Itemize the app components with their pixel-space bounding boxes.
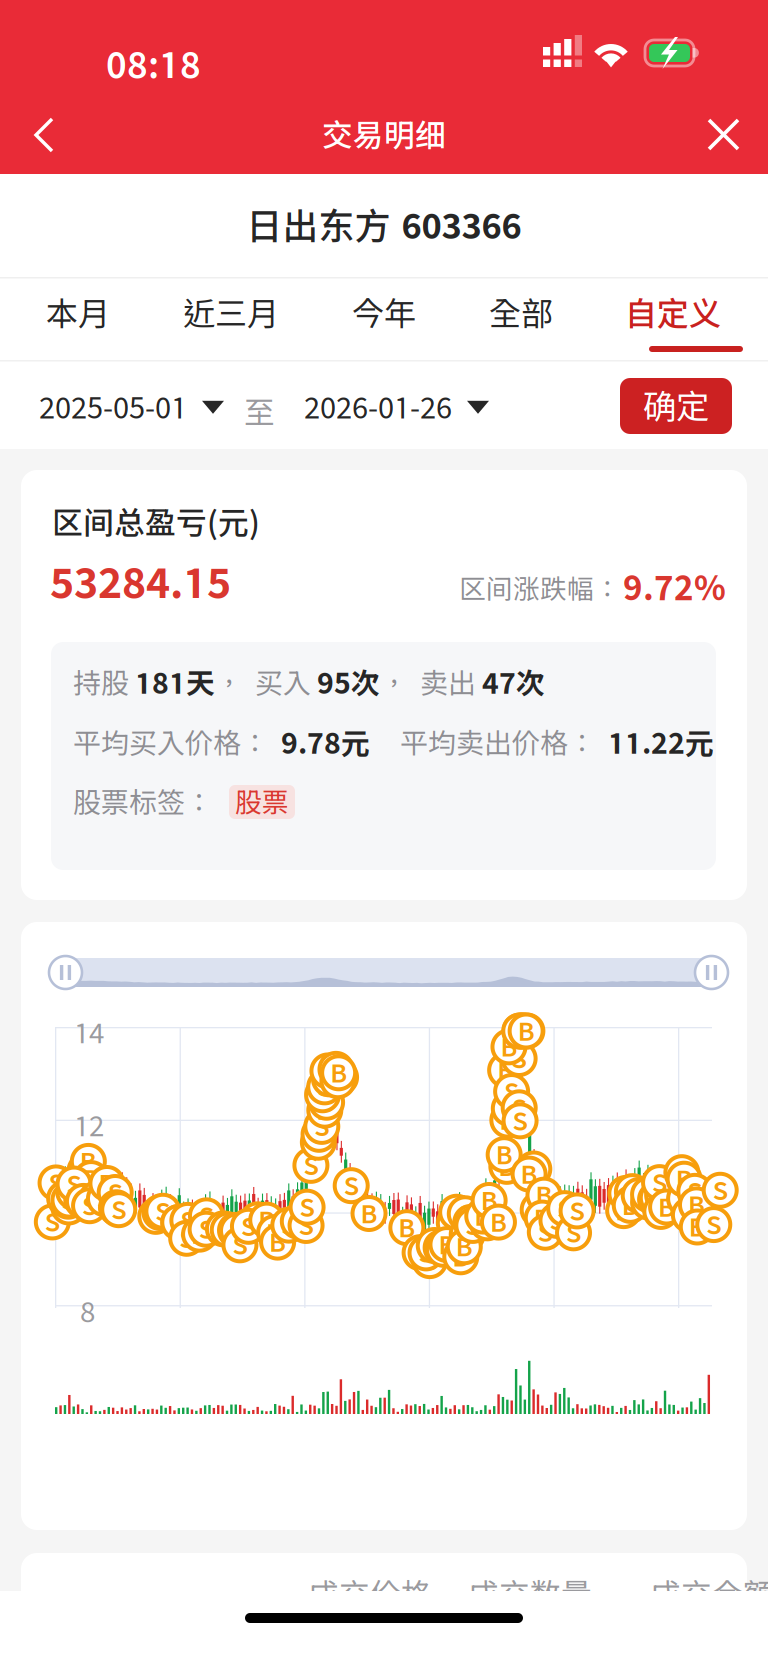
staticText: 12 — [74, 1109, 104, 1142]
staticText: 日出东方 — [246, 204, 390, 247]
button[interactable]: 2026-01-26 — [298, 366, 495, 449]
staticText: S — [465, 1210, 480, 1240]
staticText: 卖出 — [420, 666, 482, 699]
staticText: 股票标签： — [73, 785, 213, 818]
staticText: B — [77, 1156, 94, 1186]
staticText: S — [299, 1210, 314, 1240]
staticText: B — [500, 1032, 517, 1062]
button[interactable]: 返回 — [0, 95, 82, 175]
staticText: S — [171, 1207, 186, 1237]
staticText: 47次 — [482, 666, 545, 700]
staticText: B — [269, 1227, 286, 1257]
staticText: B — [474, 1201, 491, 1231]
staticText: S — [570, 1196, 585, 1226]
staticText: 自定义 — [625, 294, 721, 332]
button[interactable]: 全部 — [451, 283, 591, 361]
staticText: B — [459, 1219, 476, 1249]
staticText: S — [152, 1197, 167, 1227]
button[interactable]: 自定义 — [603, 283, 743, 361]
staticText: S — [512, 1093, 527, 1123]
staticText: S — [538, 1217, 553, 1247]
staticText: B — [266, 1218, 283, 1248]
staticText: B — [316, 1095, 333, 1125]
staticText: B — [319, 1056, 336, 1086]
staticText: S — [434, 1233, 449, 1263]
button[interactable]: 关闭 — [679, 95, 768, 174]
staticText: S — [57, 1183, 72, 1213]
staticText: B — [412, 1238, 429, 1268]
staticText: B — [689, 1212, 706, 1242]
staticText: B — [681, 1200, 698, 1230]
staticText: 至 — [244, 394, 275, 430]
staticText: S — [648, 1185, 663, 1214]
staticText: B — [98, 1168, 115, 1198]
staticText: B — [622, 1190, 639, 1220]
staticText: S — [504, 1077, 519, 1106]
staticText: 603366 — [401, 205, 521, 246]
button[interactable]: 近三月 — [161, 283, 301, 361]
staticText: B — [658, 1192, 675, 1222]
staticText: S — [155, 1196, 170, 1226]
staticText: S — [312, 1119, 327, 1149]
staticText: S — [687, 1176, 702, 1206]
staticText: 成交价格 — [308, 1576, 432, 1612]
staticText: S — [515, 1016, 530, 1046]
staticText: B — [518, 1016, 535, 1046]
button[interactable]: 今年 — [314, 283, 454, 361]
button[interactable]: 2025-05-01 — [33, 366, 230, 449]
staticText: 区间总盈亏(元) — [52, 504, 260, 540]
staticText: B — [530, 1195, 547, 1225]
staticText: 14 — [74, 1016, 104, 1049]
button[interactable]: 本月 — [8, 283, 148, 361]
button[interactable]: 确定 — [620, 378, 732, 434]
staticText: S — [179, 1223, 194, 1253]
staticText: S — [61, 1185, 76, 1215]
staticText: B — [360, 1199, 377, 1228]
staticText: S — [109, 1193, 124, 1223]
staticText: B — [191, 1219, 208, 1249]
staticText: S — [502, 1093, 517, 1123]
staticText: B — [676, 1184, 693, 1214]
staticText: S — [344, 1171, 359, 1201]
staticText: S — [566, 1218, 581, 1248]
staticText: S — [328, 1054, 343, 1084]
staticText: S — [199, 1214, 214, 1244]
staticText: 2026-01-26 — [304, 390, 452, 425]
staticText: 股票 — [235, 786, 289, 818]
staticText: B — [330, 1058, 347, 1088]
staticText: 交易明细 — [322, 116, 446, 153]
staticText: 平均卖出价格： — [370, 726, 596, 759]
staticText: S — [641, 1187, 656, 1217]
staticText: S — [512, 1016, 527, 1046]
staticText: B — [147, 1201, 164, 1231]
staticText: S — [61, 1192, 76, 1222]
staticText: S — [418, 1238, 433, 1268]
staticText: 2025-05-01 — [39, 390, 187, 425]
staticText: B — [80, 1146, 97, 1176]
staticText: S — [449, 1197, 464, 1227]
staticText: S — [322, 1064, 337, 1094]
staticText: 成交数量 — [468, 1576, 592, 1612]
staticText: B — [438, 1230, 455, 1259]
staticText: B — [688, 1190, 705, 1220]
staticText: B — [497, 1055, 514, 1085]
staticText: S — [515, 1016, 530, 1046]
staticText: B — [398, 1213, 415, 1243]
staticText: 今年 — [352, 294, 416, 332]
staticText: B — [332, 1062, 349, 1092]
staticText: S — [618, 1178, 633, 1208]
staticText: B — [499, 1105, 516, 1135]
staticText: S — [650, 1183, 665, 1213]
staticText: S — [108, 1178, 123, 1207]
staticText: B — [640, 1179, 657, 1209]
staticText: B — [615, 1196, 632, 1226]
staticText: S — [513, 1106, 528, 1136]
staticText: S — [314, 1111, 329, 1141]
staticText: S — [61, 1186, 76, 1216]
staticText: S — [89, 1184, 104, 1214]
staticText: 181天 — [135, 666, 215, 700]
staticText: B — [481, 1185, 498, 1215]
staticText: 本月 — [46, 294, 110, 332]
staticText: B — [496, 1140, 513, 1170]
staticText: B — [452, 1242, 469, 1272]
